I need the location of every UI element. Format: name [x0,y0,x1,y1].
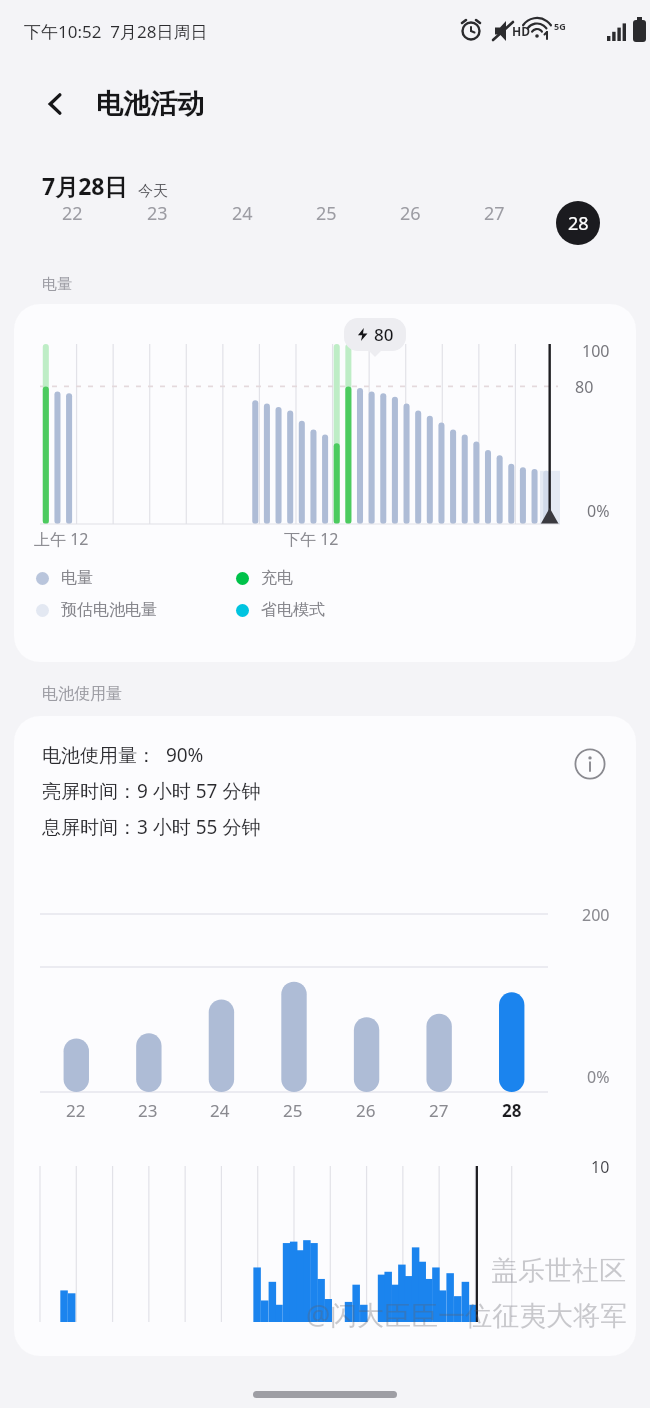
button[interactable]: 26 [368,201,452,226]
staticText: 下午10:52 7月28日周日 [24,20,208,43]
staticText: 22 [62,201,83,226]
staticText: 0% [587,500,610,522]
staticText: 23 [138,1099,158,1122]
staticText: 24 [210,1099,230,1122]
staticText: 26 [356,1099,376,1122]
staticText: 24 [232,201,253,226]
button[interactable]: Information [570,744,610,784]
staticText: 200 [582,904,610,926]
staticText: 电池使用量 [42,684,122,704]
button[interactable]: 27 [452,201,536,226]
button[interactable]: 22 [30,201,115,226]
staticText: 100 [582,340,610,362]
staticText: 盖乐世社区 [491,1254,626,1288]
staticText: 7月28日 [42,170,128,201]
staticText: 28 [502,1099,522,1122]
staticText: 充电 [261,568,293,588]
staticText: 下午 12 [284,528,339,550]
staticText: 25 [316,201,337,226]
button[interactable]: 25 [284,201,368,226]
staticText: @闪大臣臣一位征夷大将军 [306,1296,628,1333]
button[interactable]: 23 [115,201,200,226]
staticText: 息屏时间：3 小时 55 分钟 [42,814,261,840]
staticText: 电池使用量： 90% [42,742,204,768]
staticText: 10 [591,1156,610,1178]
staticText: 26 [400,201,421,226]
staticText: 电池活动 [96,87,204,121]
staticText: 27 [484,201,505,226]
staticText: 23 [147,201,168,226]
staticText: 80 [575,376,594,398]
staticText: 28 [568,211,589,236]
button[interactable]: 24 [200,201,284,226]
staticText: 27 [429,1099,449,1122]
staticText: 80 [374,323,394,346]
staticText: 25 [283,1099,303,1122]
staticText: 22 [66,1099,86,1122]
staticText: HD [512,23,530,39]
button[interactable]: 28 [536,201,620,245]
staticText: 省电模式 [261,600,325,620]
staticText: 上午 12 [34,528,89,550]
staticText: 0% [587,1066,610,1088]
staticText: 预估电池电量 [61,600,157,620]
button[interactable]: 100 [14,304,636,662]
staticText: 电量 [61,568,93,588]
button[interactable]: Back [34,82,78,126]
staticText: 5G [554,20,566,32]
staticText: 电量 [42,275,72,294]
staticText: 亮屏时间：9 小时 57 分钟 [42,778,261,804]
staticText: 今天 [138,182,168,201]
